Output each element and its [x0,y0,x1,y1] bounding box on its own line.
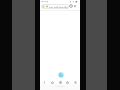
staticText: en.wikipedia.org [49,5,69,9]
button[interactable]: Tabs [69,4,73,8]
button[interactable]: en.wikipedia.org [41,4,69,9]
button[interactable]: Back [41,79,48,84]
button[interactable]: New tab [57,79,64,84]
button[interactable]: Home [49,79,56,84]
button[interactable]: Bookmarks [64,79,71,84]
button[interactable]: Downloads [72,79,79,84]
button[interactable]: More options [73,4,77,8]
